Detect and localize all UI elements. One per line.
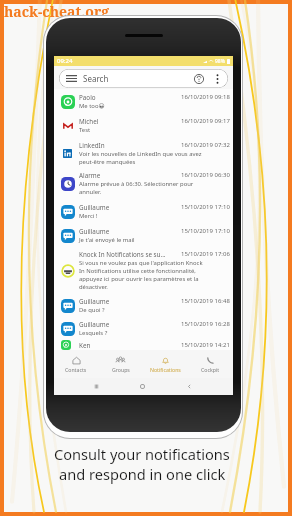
staticText: Consult your notifications	[54, 444, 230, 464]
staticText: Search	[83, 73, 109, 84]
staticText: Guillaume	[79, 320, 178, 329]
staticText: 15/10/2019 16:48	[181, 297, 230, 305]
staticText: désactiver.	[79, 283, 108, 291]
staticText: peut-être manquées	[79, 158, 136, 166]
other: Back	[186, 383, 193, 390]
button[interactable]: Menu	[59, 69, 228, 88]
staticText: Notifications	[150, 366, 181, 373]
staticText: Contacts	[65, 366, 87, 373]
button[interactable]: Michel	[54, 113, 233, 138]
staticText: Ken	[79, 341, 178, 350]
staticText: 16/10/2019 07:32	[181, 141, 230, 149]
button[interactable]: Ken	[54, 340, 233, 350]
staticText: Voir les nouvelles de LinkedIn que vous …	[79, 150, 202, 158]
button[interactable]: Guillaume	[54, 199, 233, 223]
staticText: Merci !	[79, 212, 98, 220]
staticText: 16/10/2019 09:18	[181, 93, 230, 101]
staticText: Alarme	[79, 171, 178, 180]
staticText: Test	[79, 126, 91, 134]
staticText: Guillaume	[79, 227, 178, 236]
staticText: 15/10/2019 16:28	[181, 320, 230, 328]
staticText: Groups	[112, 366, 130, 373]
staticText: 15/10/2019 17:06	[181, 250, 230, 258]
staticText: 15/10/2019 14:21	[181, 341, 230, 349]
button[interactable]: Paolo	[54, 89, 233, 113]
other: Help	[194, 74, 204, 84]
staticText: Knock In Notifications se su...	[79, 250, 178, 259]
staticText: De quoi ?	[79, 306, 105, 314]
staticText: Alarme prévue à 06:30. Sélectionner pour	[79, 180, 194, 188]
button[interactable]: Contacts	[54, 350, 98, 378]
staticText: Paolo	[79, 93, 178, 102]
button[interactable]: Groups	[98, 350, 143, 378]
button[interactable]: LinkedIn	[54, 138, 233, 168]
staticText: In Notifications utilise cette fonctionn…	[79, 267, 196, 275]
staticText: LinkedIn	[79, 141, 178, 150]
button[interactable]: Knock In Notifications se su...	[54, 247, 233, 293]
button[interactable]: Guillaume	[54, 317, 233, 340]
other: Menu	[66, 75, 77, 82]
staticText: 15/10/2019 17:10	[181, 203, 230, 211]
staticText: Michel	[79, 117, 178, 126]
staticText: appuyez ici pour ouvrir les paramètres e…	[79, 275, 199, 283]
staticText: annuler.	[79, 188, 102, 196]
button[interactable]: Guillaume	[54, 293, 233, 317]
other: Recents	[93, 383, 100, 390]
other: More options	[216, 74, 219, 84]
staticText: Me too😀	[79, 102, 105, 110]
staticText: Cockpit	[201, 366, 220, 373]
staticText: Je t'ai envoyé le mail	[79, 236, 135, 244]
staticText: 16/10/2019 06:30	[181, 171, 230, 179]
staticText: 09:24	[57, 57, 73, 65]
button[interactable]: Alarme	[54, 168, 233, 199]
staticText: Si vous ne voulez pas que l'application …	[79, 259, 203, 267]
button[interactable]: Notifications	[143, 350, 188, 378]
other: Home	[139, 383, 146, 390]
staticText: Lesquels ?	[79, 329, 108, 337]
staticText: 16/10/2019 09:17	[181, 117, 230, 125]
button[interactable]: Guillaume	[54, 223, 233, 247]
staticText: and respond in one click	[59, 464, 226, 484]
button[interactable]: Cockpit	[188, 350, 233, 378]
staticText: 98%	[215, 58, 225, 65]
staticText: 15/10/2019 17:10	[181, 227, 230, 235]
staticText: Guillaume	[79, 203, 178, 212]
staticText: hack-cheat.org	[4, 2, 110, 21]
staticText: Guillaume	[79, 297, 178, 306]
